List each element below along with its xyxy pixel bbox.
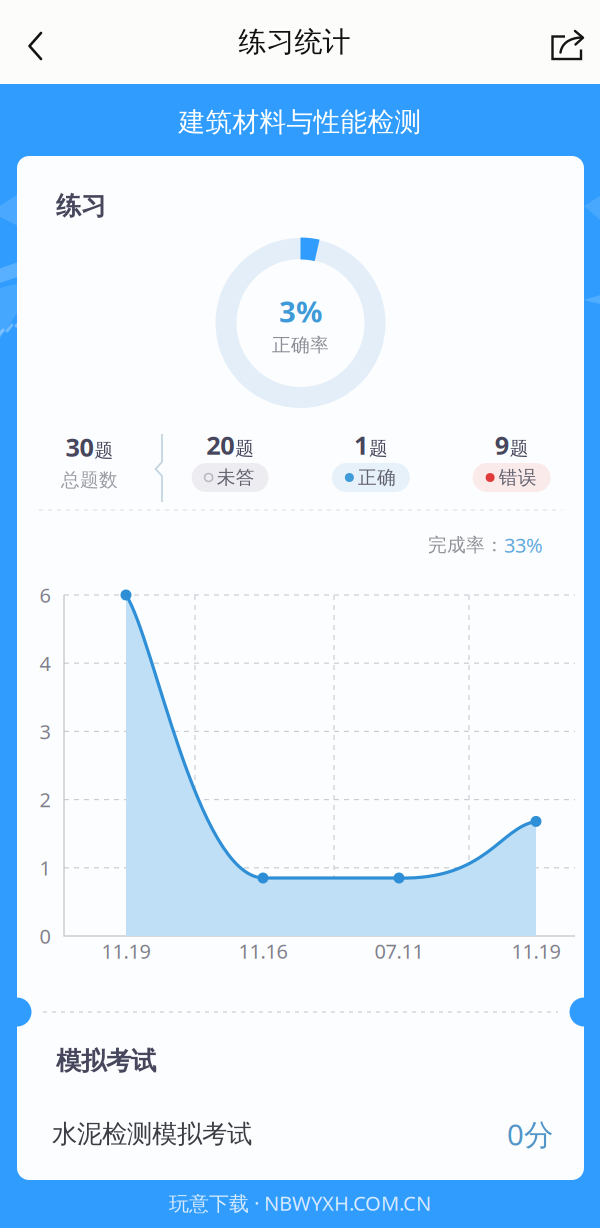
staticText: 6: [39, 582, 50, 608]
button[interactable]: 水泥检测模拟考试: [17, 1105, 584, 1163]
button[interactable]: Back: [10, 14, 58, 70]
staticText: 0: [39, 923, 50, 949]
staticText: 9: [495, 428, 509, 462]
staticText: 2: [39, 786, 50, 813]
staticText: 总题数: [61, 468, 118, 491]
staticText: 练习: [56, 190, 106, 221]
staticText: 20: [206, 428, 234, 462]
staticText: 练习统计: [238, 25, 350, 59]
staticText: 30: [65, 430, 93, 464]
staticText: 33%: [504, 532, 543, 558]
staticText: 11.19: [511, 938, 560, 964]
staticText: 题: [510, 437, 529, 460]
staticText: 模拟考试: [56, 1045, 156, 1076]
staticText: 3%: [279, 291, 322, 330]
staticText: 11.16: [238, 938, 287, 964]
staticText: 题: [235, 437, 254, 460]
staticText: 错误: [499, 466, 537, 489]
staticText: 07.11: [374, 938, 423, 964]
staticText: 未答: [217, 466, 255, 489]
staticText: 玩意下载 · NBWYXH.COM.CN: [169, 1190, 431, 1216]
button[interactable]: Share: [531, 14, 590, 69]
staticText: 水泥检测模拟考试: [52, 1118, 252, 1149]
staticText: 4: [39, 650, 50, 676]
staticText: 11.19: [101, 938, 150, 964]
staticText: 正确率: [272, 333, 329, 356]
staticText: 1: [39, 854, 50, 881]
staticText: 3: [39, 718, 50, 745]
staticText: 完成率：: [428, 533, 504, 556]
staticText: 正确: [358, 466, 396, 489]
staticText: 题: [94, 439, 113, 462]
staticText: 1: [354, 428, 368, 462]
staticText: 0分: [507, 1114, 553, 1153]
staticText: 题: [369, 437, 388, 460]
staticText: 建筑材料与性能检测: [178, 106, 421, 138]
